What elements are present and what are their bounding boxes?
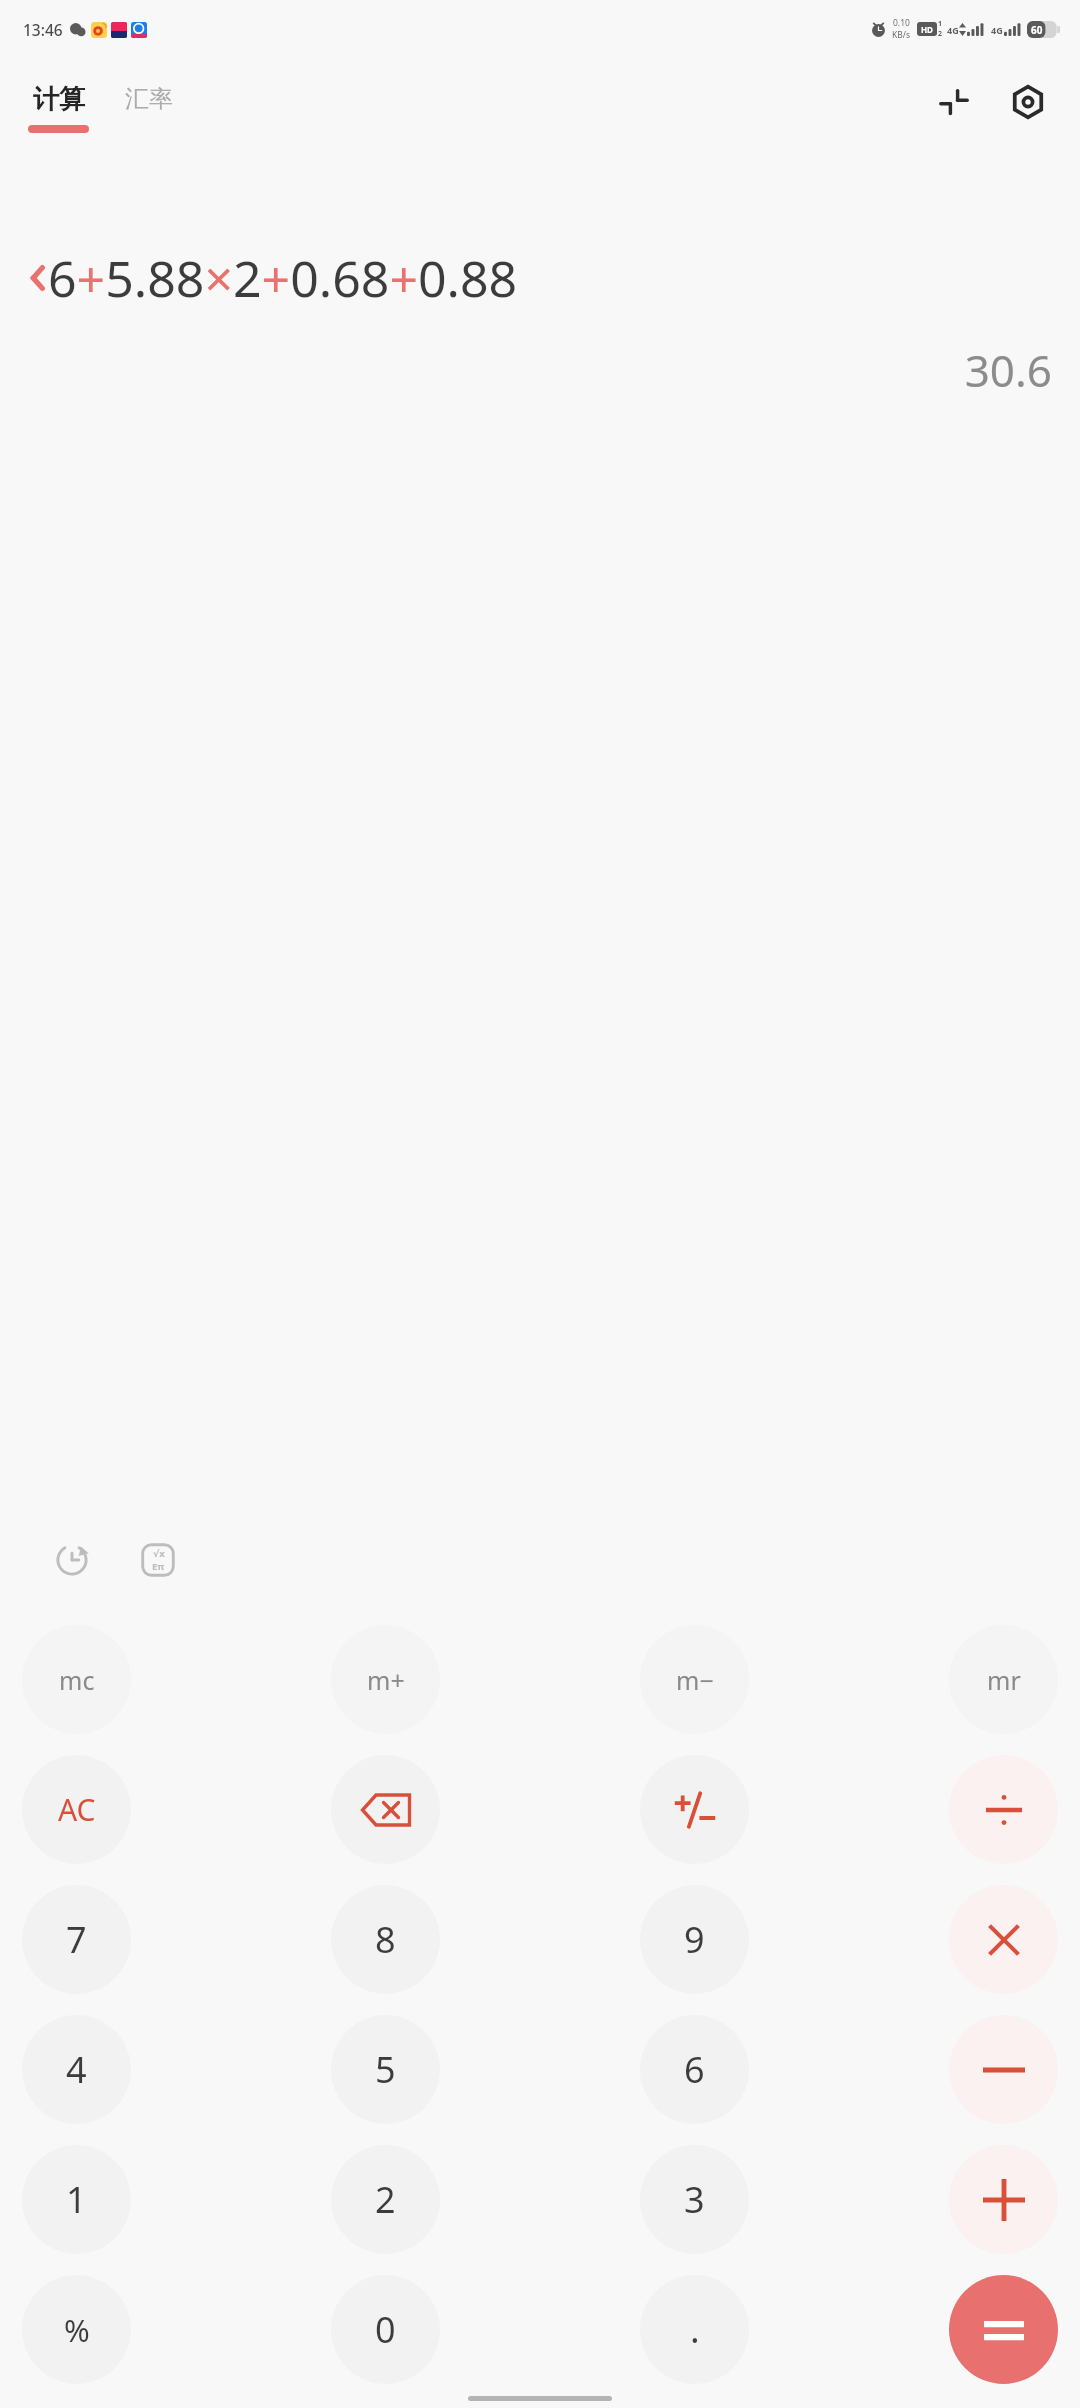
staticText: 4G bbox=[947, 24, 959, 36]
button[interactable]: Multiply bbox=[949, 1885, 1058, 1994]
staticText: 2 bbox=[375, 2175, 396, 2224]
button[interactable]: 7 bbox=[22, 1885, 131, 1994]
staticText: 计算 bbox=[33, 83, 85, 116]
button[interactable]: mr bbox=[949, 1625, 1058, 1734]
staticText: 0.10 bbox=[893, 17, 910, 29]
staticText: 60 bbox=[1031, 23, 1043, 37]
staticText: % bbox=[64, 2309, 90, 2351]
button[interactable]: History bbox=[46, 1534, 98, 1586]
staticText: 13:46 bbox=[23, 19, 63, 40]
button[interactable]: 6 bbox=[640, 2015, 749, 2124]
button[interactable]: Scientific bbox=[132, 1534, 184, 1586]
button[interactable]: Divide bbox=[949, 1755, 1058, 1864]
button[interactable]: mc bbox=[22, 1625, 131, 1734]
staticText: HD bbox=[921, 24, 933, 35]
staticText: 6 bbox=[684, 2045, 705, 2094]
staticText: 1 bbox=[938, 19, 943, 29]
button[interactable]: 2 bbox=[331, 2145, 440, 2254]
staticText: 4 bbox=[66, 2045, 87, 2094]
button[interactable]: Equals bbox=[949, 2275, 1058, 2384]
staticText: 3 bbox=[684, 2175, 705, 2224]
button[interactable]: 9 bbox=[640, 1885, 749, 1994]
button[interactable]: 汇率 bbox=[119, 87, 179, 129]
staticText: √x bbox=[153, 1547, 165, 1560]
button[interactable]: Plus minus bbox=[640, 1755, 749, 1864]
staticText: 1 bbox=[66, 2175, 87, 2224]
button[interactable]: Settings bbox=[1002, 76, 1054, 128]
staticText: . bbox=[690, 2305, 700, 2354]
staticText: 汇率 bbox=[125, 84, 173, 114]
button[interactable]: Plus bbox=[949, 2145, 1058, 2254]
staticText: KB/s bbox=[892, 29, 911, 41]
staticText: 0 bbox=[375, 2305, 396, 2354]
button[interactable]: 4 bbox=[22, 2015, 131, 2124]
staticText: AC bbox=[58, 1789, 96, 1830]
staticText: mr bbox=[987, 1663, 1021, 1697]
staticText: 8 bbox=[375, 1915, 396, 1964]
button[interactable]: 5 bbox=[331, 2015, 440, 2124]
button[interactable]: 计算 bbox=[24, 79, 93, 137]
button[interactable]: m+ bbox=[331, 1625, 440, 1734]
button[interactable]: 3 bbox=[640, 2145, 749, 2254]
button[interactable]: AC bbox=[22, 1755, 131, 1864]
button[interactable]: m− bbox=[640, 1625, 749, 1734]
staticText: 9 bbox=[684, 1915, 705, 1964]
staticText: 4G bbox=[991, 24, 1003, 36]
staticText: 5 bbox=[375, 2045, 396, 2094]
staticText: m− bbox=[676, 1663, 714, 1697]
staticText: 2 bbox=[938, 29, 943, 39]
staticText: 6+5.88×2+0.68+0.88 bbox=[48, 244, 518, 312]
staticText: Eπ bbox=[152, 1560, 165, 1573]
staticText: 7 bbox=[66, 1915, 87, 1964]
staticText: m+ bbox=[367, 1663, 405, 1697]
button[interactable]: Backspace bbox=[331, 1755, 440, 1864]
staticText: mc bbox=[59, 1663, 95, 1697]
button[interactable]: . bbox=[640, 2275, 749, 2384]
button[interactable]: Minus bbox=[949, 2015, 1058, 2124]
button[interactable]: % bbox=[22, 2275, 131, 2384]
button[interactable]: 0 bbox=[331, 2275, 440, 2384]
button[interactable]: Collapse bbox=[928, 76, 980, 128]
staticText: 30.6 bbox=[28, 340, 1052, 400]
button[interactable]: 8 bbox=[331, 1885, 440, 1994]
button[interactable]: 1 bbox=[22, 2145, 131, 2254]
